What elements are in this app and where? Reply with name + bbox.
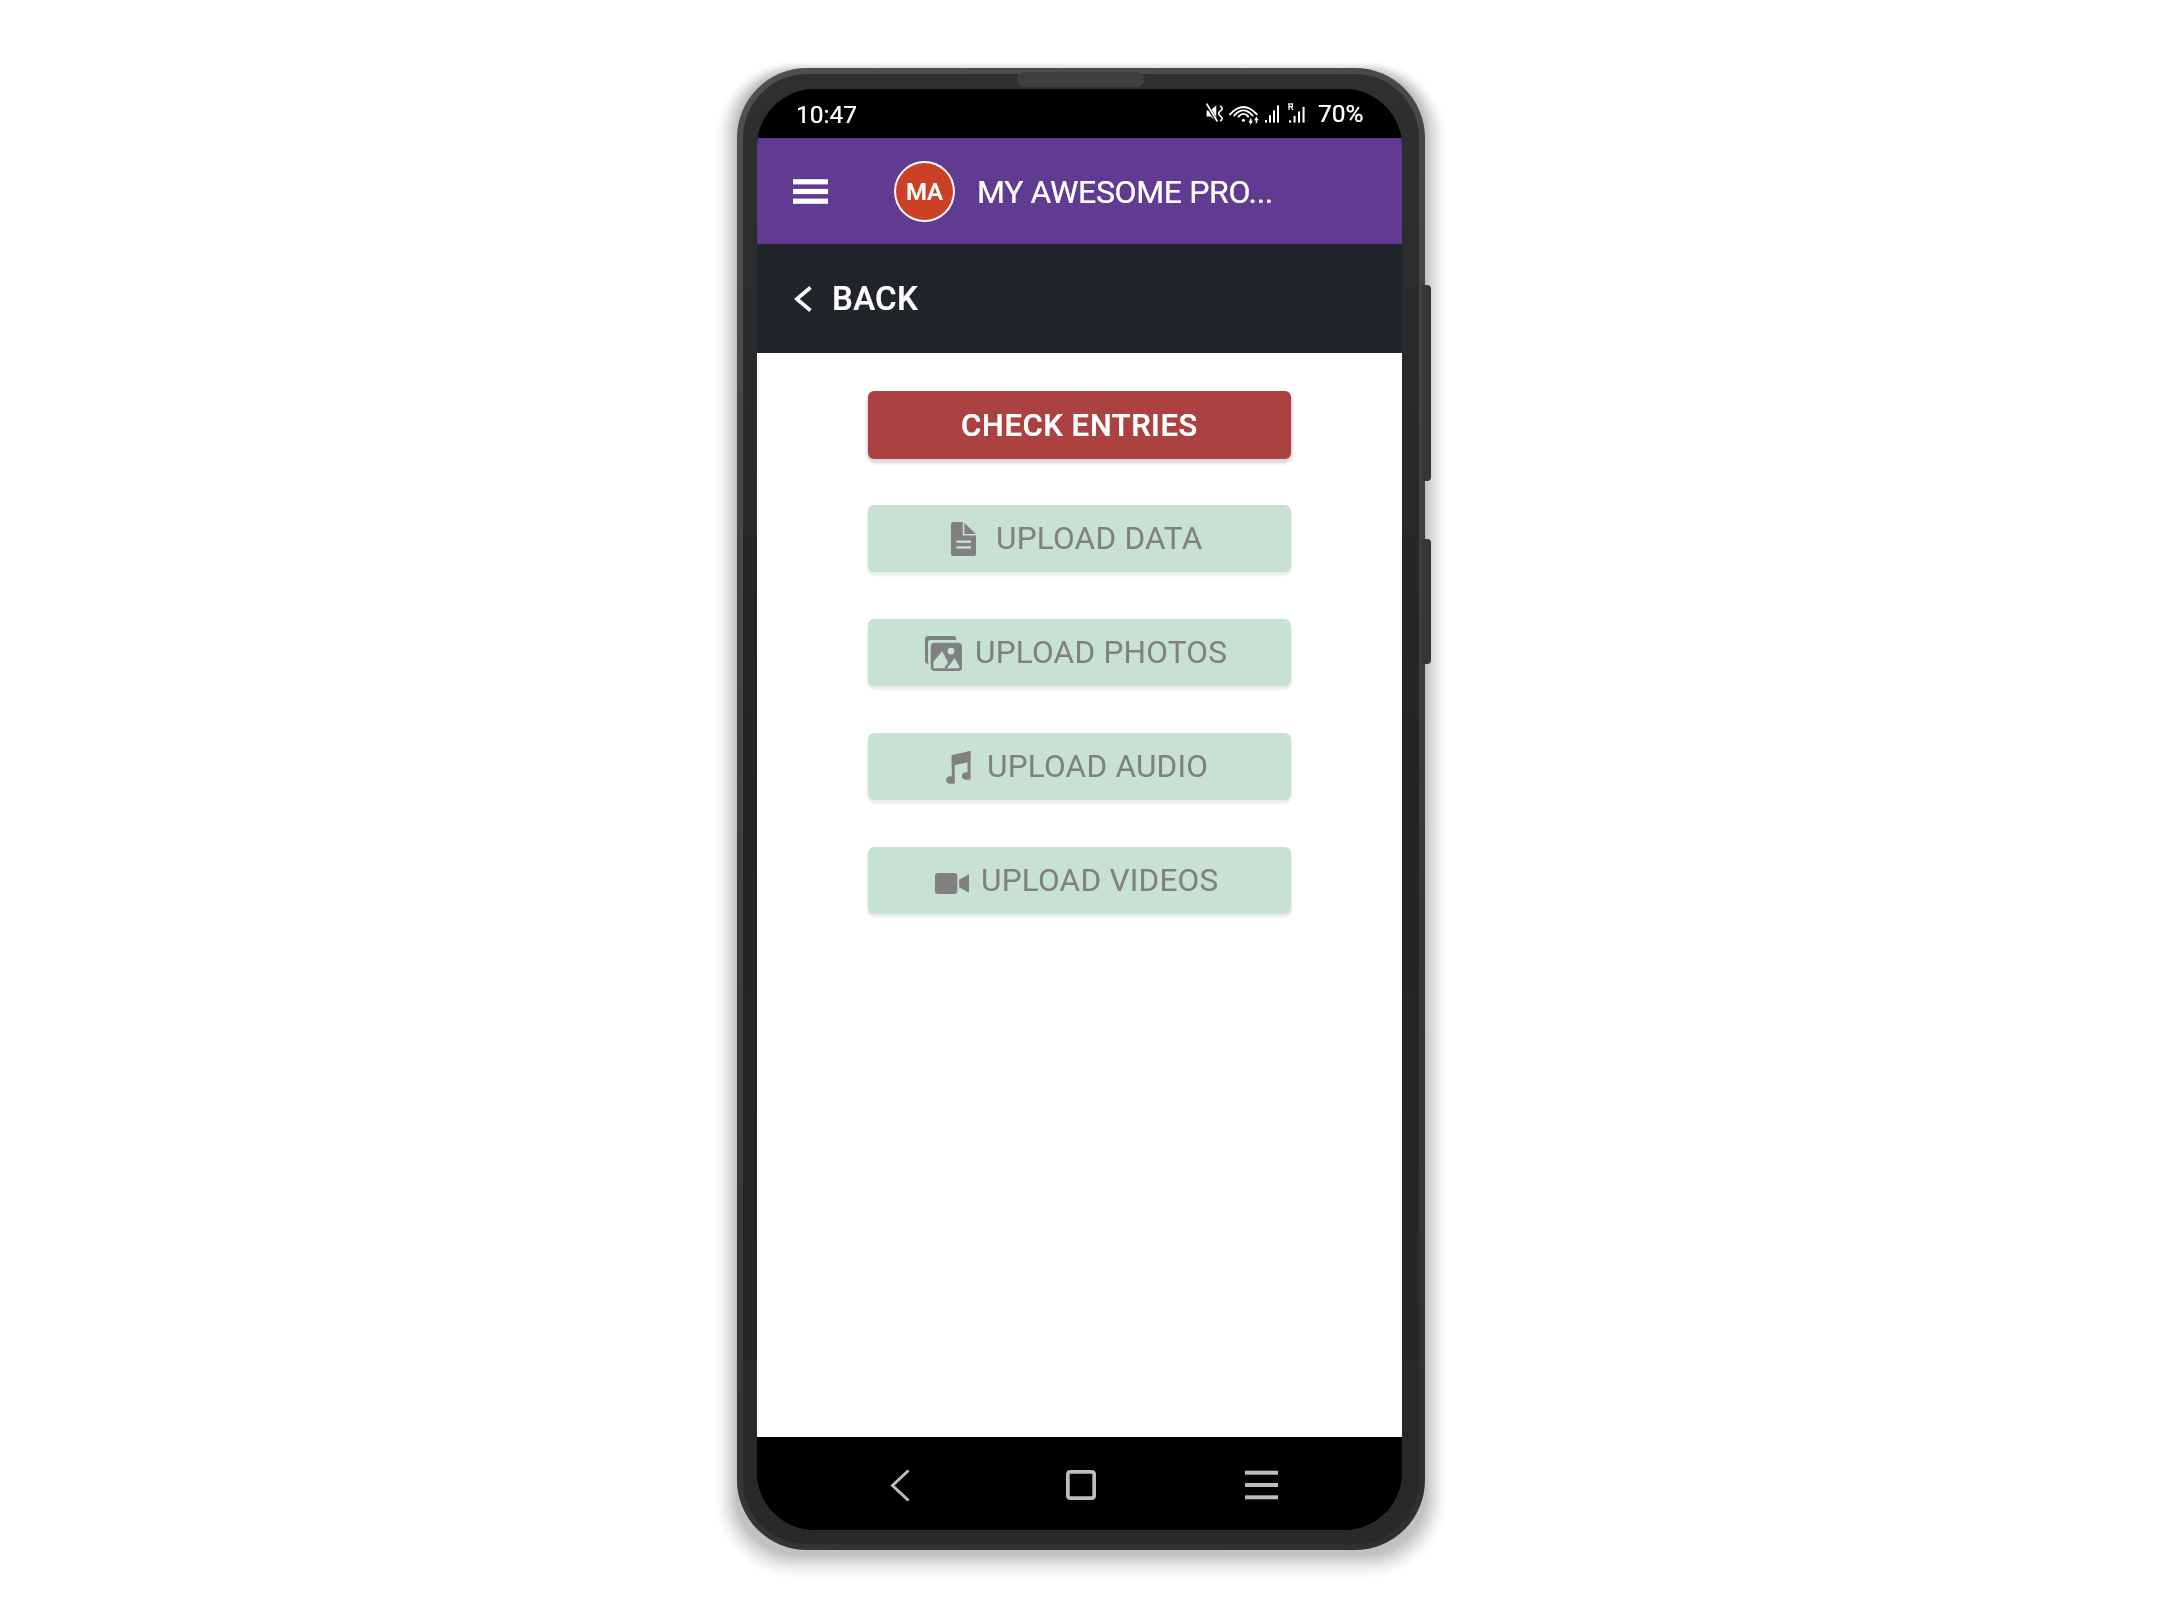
staticText: UPLOAD AUDIO xyxy=(987,748,1209,785)
button[interactable]: UPLOAD PHOTOS xyxy=(868,619,1291,686)
button[interactable]: Home xyxy=(1053,1457,1109,1513)
button[interactable]: UPLOAD VIDEOS xyxy=(868,847,1291,914)
staticText: BACK xyxy=(832,279,919,318)
staticText: MY AWESOME PRO... xyxy=(977,173,1273,211)
staticText: 70% xyxy=(1318,99,1364,128)
button[interactable]: Back xyxy=(872,1457,928,1513)
staticText: MA xyxy=(906,178,943,206)
button[interactable]: MA xyxy=(894,161,1273,222)
staticText: UPLOAD DATA xyxy=(996,520,1203,557)
button[interactable]: UPLOAD AUDIO xyxy=(868,733,1291,800)
button[interactable]: CHECK ENTRIES xyxy=(868,391,1291,459)
button[interactable]: UPLOAD DATA xyxy=(868,505,1291,572)
button[interactable]: BACK xyxy=(795,279,919,318)
staticText: CHECK ENTRIES xyxy=(961,407,1198,443)
staticText: 10:47 xyxy=(796,100,858,129)
staticText: UPLOAD VIDEOS xyxy=(981,862,1219,899)
button[interactable]: Recent apps xyxy=(1233,1457,1289,1513)
staticText: UPLOAD PHOTOS xyxy=(975,634,1228,671)
button[interactable]: Open navigation drawer xyxy=(781,162,839,220)
